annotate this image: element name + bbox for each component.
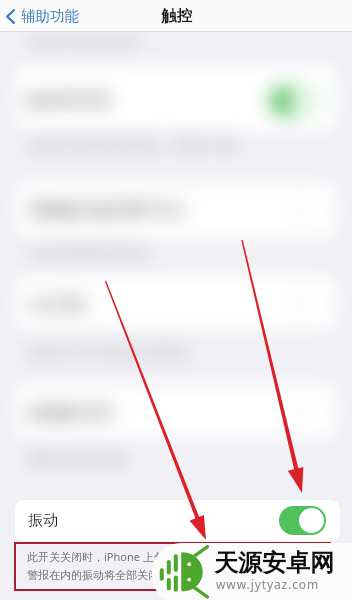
staticText: 轻点背面 xyxy=(30,296,86,314)
staticText: www.jytyaz.com xyxy=(216,576,320,592)
staticText: 辅助触控 触控调节方式 xyxy=(30,199,184,219)
staticText: 允许使用辅助触控操作设备。 xyxy=(28,246,158,259)
staticText: 此开关关闭时，iPhone 上包括来电和 xyxy=(27,549,209,564)
staticText: 振动 xyxy=(28,511,58,530)
staticText: 辅助功能 xyxy=(21,7,79,25)
staticText: 触感触控设置 xyxy=(30,404,114,422)
button[interactable]: 辅助功能 xyxy=(0,3,89,29)
staticText: 触控调节设置 xyxy=(28,92,112,110)
staticText: 触控 xyxy=(161,6,192,26)
button[interactable]: 振动 xyxy=(15,500,340,541)
staticText: 连按两下或三下背面以执行快捷操作。 xyxy=(28,345,198,358)
staticText: 天源安卓网 xyxy=(214,548,334,578)
staticText: 警报在内的振动将全部关闭。 xyxy=(27,568,170,582)
